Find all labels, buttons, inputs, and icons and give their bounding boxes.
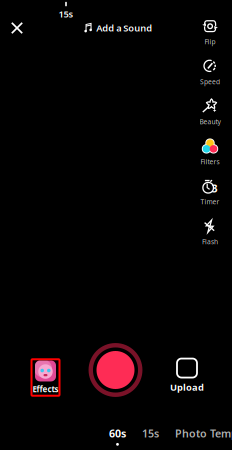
staticText: Beauty [199,117,220,126]
staticText: Upload [170,381,204,393]
staticText: Filters [200,157,219,166]
button[interactable]: Effects [31,359,59,396]
button[interactable]: Upload [170,359,204,393]
staticText: 3 [212,181,218,195]
staticText: 15s [142,426,159,440]
button[interactable]: Speed [193,57,227,87]
button[interactable]: 3 [193,177,227,207]
staticText: 60s [109,426,126,440]
button[interactable]: 60s [109,426,126,446]
button[interactable]: Flash [193,217,227,247]
button[interactable]: Close [1,12,33,44]
button[interactable]: Add a Sound [80,17,156,39]
staticText: Speed [200,77,220,86]
staticText: Flash [202,237,218,246]
staticText: Add a Sound [96,22,152,34]
staticText: 15s [58,8,73,20]
button[interactable]: Record [87,342,143,398]
button[interactable]: Beauty [193,97,227,127]
button[interactable]: Flip [193,17,227,47]
staticText: Timer [200,197,219,206]
staticText: Flip [204,37,215,46]
button[interactable]: Filters [193,137,227,167]
staticText: Effects [32,384,58,394]
button[interactable]: 15s [142,426,159,446]
staticText: Photo Template [175,426,232,440]
button[interactable]: Photo Template [175,426,232,446]
